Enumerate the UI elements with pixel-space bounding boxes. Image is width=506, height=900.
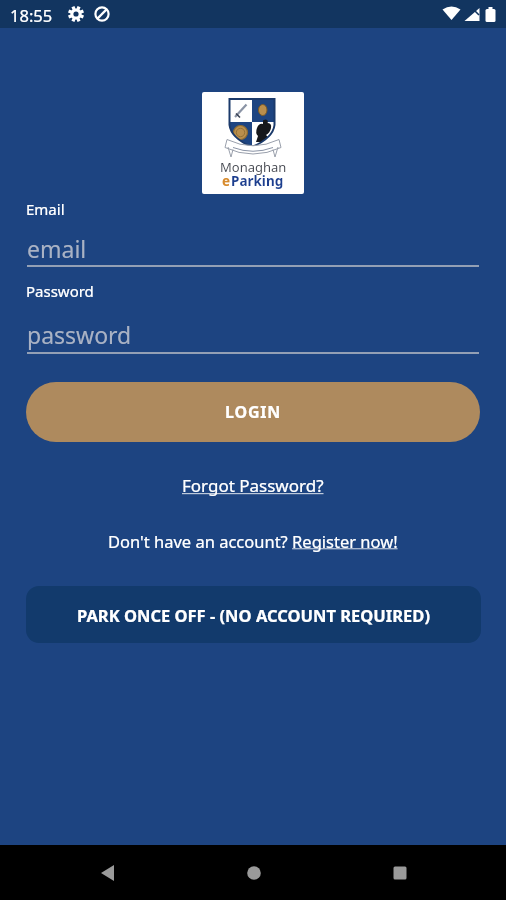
staticText: email — [27, 233, 87, 264]
button[interactable]: Forgot Password? — [182, 474, 324, 497]
staticText: PARK ONCE OFF - (NO ACCOUNT REQUIRED) — [77, 604, 430, 626]
button[interactable]: email — [27, 228, 479, 267]
staticText: Email — [26, 199, 65, 219]
staticText: 18:55 — [10, 4, 53, 26]
button[interactable] — [238, 861, 270, 885]
button[interactable]: PARK ONCE OFF - (NO ACCOUNT REQUIRED) — [26, 586, 481, 643]
staticText: password — [27, 319, 132, 350]
button[interactable]: password — [27, 314, 479, 353]
staticText: Parking — [231, 172, 284, 190]
button[interactable] — [92, 861, 124, 885]
button[interactable] — [384, 861, 416, 885]
staticText: LOGIN — [225, 401, 282, 423]
staticText: Password — [26, 281, 94, 301]
staticText: e — [222, 172, 231, 190]
button[interactable]: Don't have an account? Register now! — [108, 530, 398, 552]
staticText: Monaghan — [220, 158, 287, 176]
button[interactable]: LOGIN — [26, 382, 480, 442]
